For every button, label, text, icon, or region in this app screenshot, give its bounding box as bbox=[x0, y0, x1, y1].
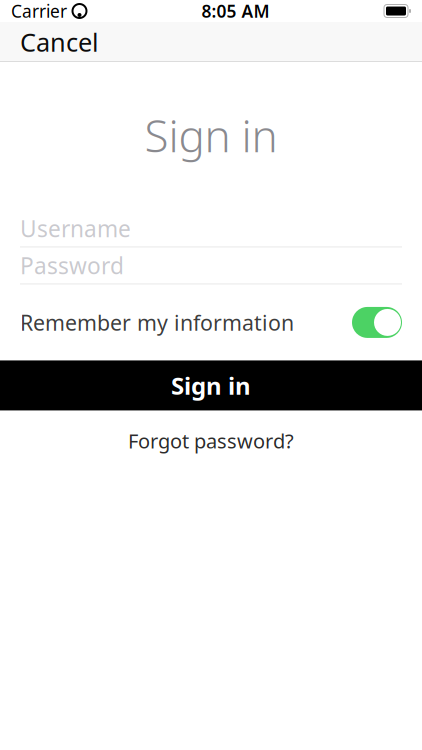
staticText: Password bbox=[20, 250, 124, 280]
staticText: Cancel bbox=[20, 25, 99, 59]
button[interactable]: Remember my information bbox=[352, 307, 402, 338]
button[interactable]: Sign in bbox=[0, 360, 422, 410]
staticText: Forgot password? bbox=[128, 427, 294, 454]
button[interactable]: Cancel bbox=[0, 17, 119, 67]
staticText: 8:05 AM bbox=[201, 0, 269, 22]
staticText: Carrier bbox=[11, 0, 67, 22]
button[interactable]: Forgot password? bbox=[0, 419, 422, 462]
staticText: Sign in bbox=[144, 106, 277, 164]
staticText: Username bbox=[20, 213, 131, 243]
staticText: Remember my information bbox=[20, 308, 294, 337]
staticText: Sign in bbox=[171, 369, 251, 401]
